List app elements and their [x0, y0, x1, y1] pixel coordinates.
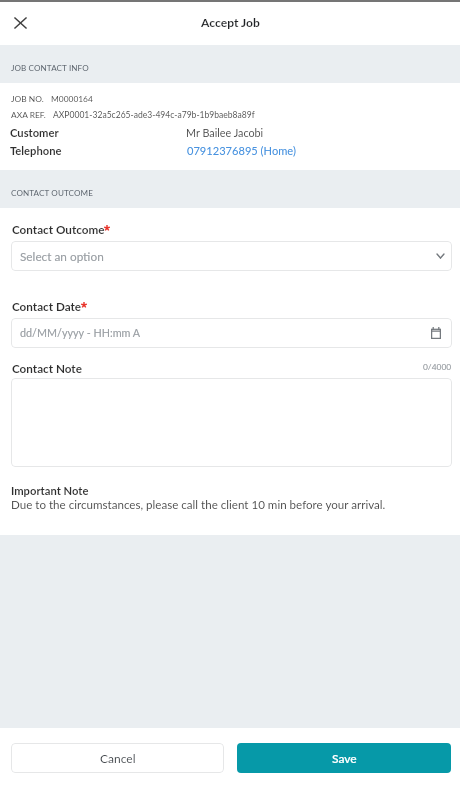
button[interactable]: Close	[6, 9, 34, 37]
button[interactable]: Select an option	[11, 241, 452, 271]
staticText: M0000164	[51, 94, 93, 104]
staticText: Select an option	[20, 249, 104, 263]
staticText: Important Note	[11, 484, 89, 497]
staticText: Accept Job	[201, 15, 260, 30]
staticText: 0/4000	[423, 362, 452, 372]
staticText: Contact Date	[12, 299, 82, 313]
staticText: Contact Note	[12, 361, 82, 375]
staticText: JOB NO.	[11, 94, 44, 104]
button[interactable]: dd/MM/yyyy - HH:mm A	[11, 318, 452, 348]
staticText: AXA REF.	[11, 110, 46, 120]
staticText: CONTACT OUTCOME	[11, 188, 93, 198]
staticText: Telephone	[10, 144, 62, 157]
staticText: Contact Outcome	[12, 222, 105, 236]
staticText: Cancel	[100, 751, 136, 765]
staticText: JOB CONTACT INFO	[11, 63, 89, 73]
staticText: Save	[332, 751, 357, 765]
button[interactable]: Cancel	[11, 743, 224, 773]
button[interactable]: Save	[237, 743, 451, 773]
button[interactable]	[11, 378, 452, 467]
staticText: Due to the circumstances, please call th…	[11, 498, 386, 512]
staticText: Mr Bailee Jacobi	[186, 126, 264, 139]
staticText: 07912376895 (Home)	[187, 144, 296, 157]
staticText: dd/MM/yyyy - HH:mm A	[20, 326, 141, 339]
staticText: AXP0001-32a5c265-ade3-494c-a79b-1b9baeb8…	[53, 110, 255, 120]
staticText: Customer	[10, 126, 59, 139]
